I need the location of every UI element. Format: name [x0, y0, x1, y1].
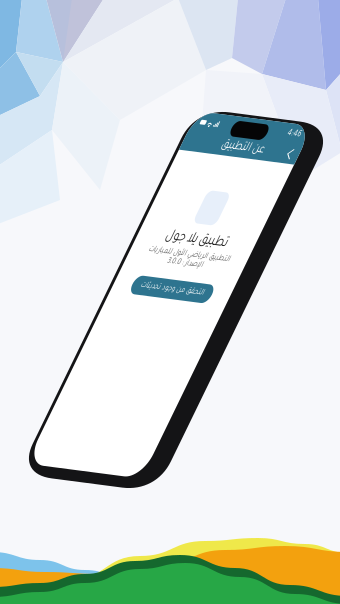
- button[interactable]: التحقق من وجود تحديثات: [31, 197, 169, 220]
- staticText: الإصدار : 3.0.0: [69, 171, 131, 182]
- staticText: تطبيق يلا جول: [47, 139, 153, 158]
- staticText: 4:46: [164, 6, 187, 18]
- button[interactable]: Back: [174, 22, 195, 48]
- staticText: التحقق من وجود تحديثات: [45, 203, 155, 214]
- staticText: التطبيق الرياضي الأول للمباريات: [29, 161, 170, 171]
- staticText: عن التطبيق: [65, 27, 139, 43]
